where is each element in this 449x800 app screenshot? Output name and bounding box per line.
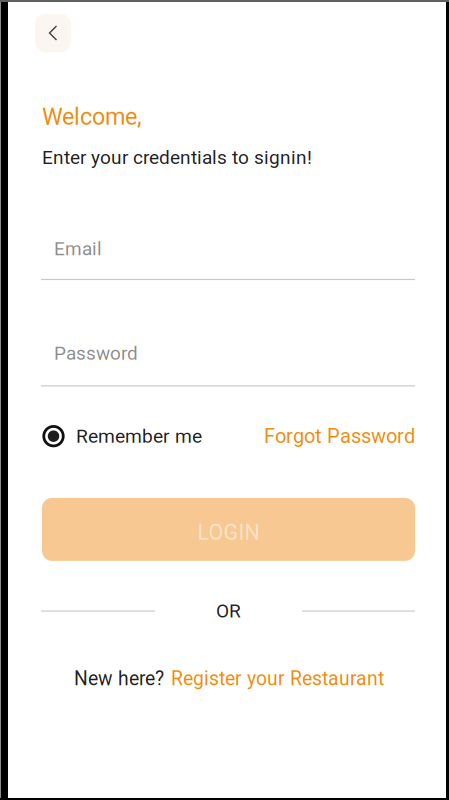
staticText: Remember me xyxy=(76,425,202,447)
staticText: Email xyxy=(54,238,102,260)
staticText: Welcome, xyxy=(42,103,142,130)
staticText: Register your Restaurant xyxy=(171,667,384,690)
button[interactable]: LOGIN xyxy=(42,498,415,561)
staticText: Forgot Password xyxy=(264,424,415,448)
staticText: Password xyxy=(54,342,138,364)
button[interactable]: Register your Restaurant xyxy=(164,667,384,690)
staticText: LOGIN xyxy=(197,520,259,545)
staticText: New here? xyxy=(74,667,164,690)
button[interactable]: Back xyxy=(35,14,71,52)
staticText: Enter your credentials to signin! xyxy=(42,146,312,169)
button[interactable]: Forgot Password xyxy=(264,424,415,448)
staticText: OR xyxy=(216,600,241,622)
button[interactable]: Remember me xyxy=(42,425,202,448)
